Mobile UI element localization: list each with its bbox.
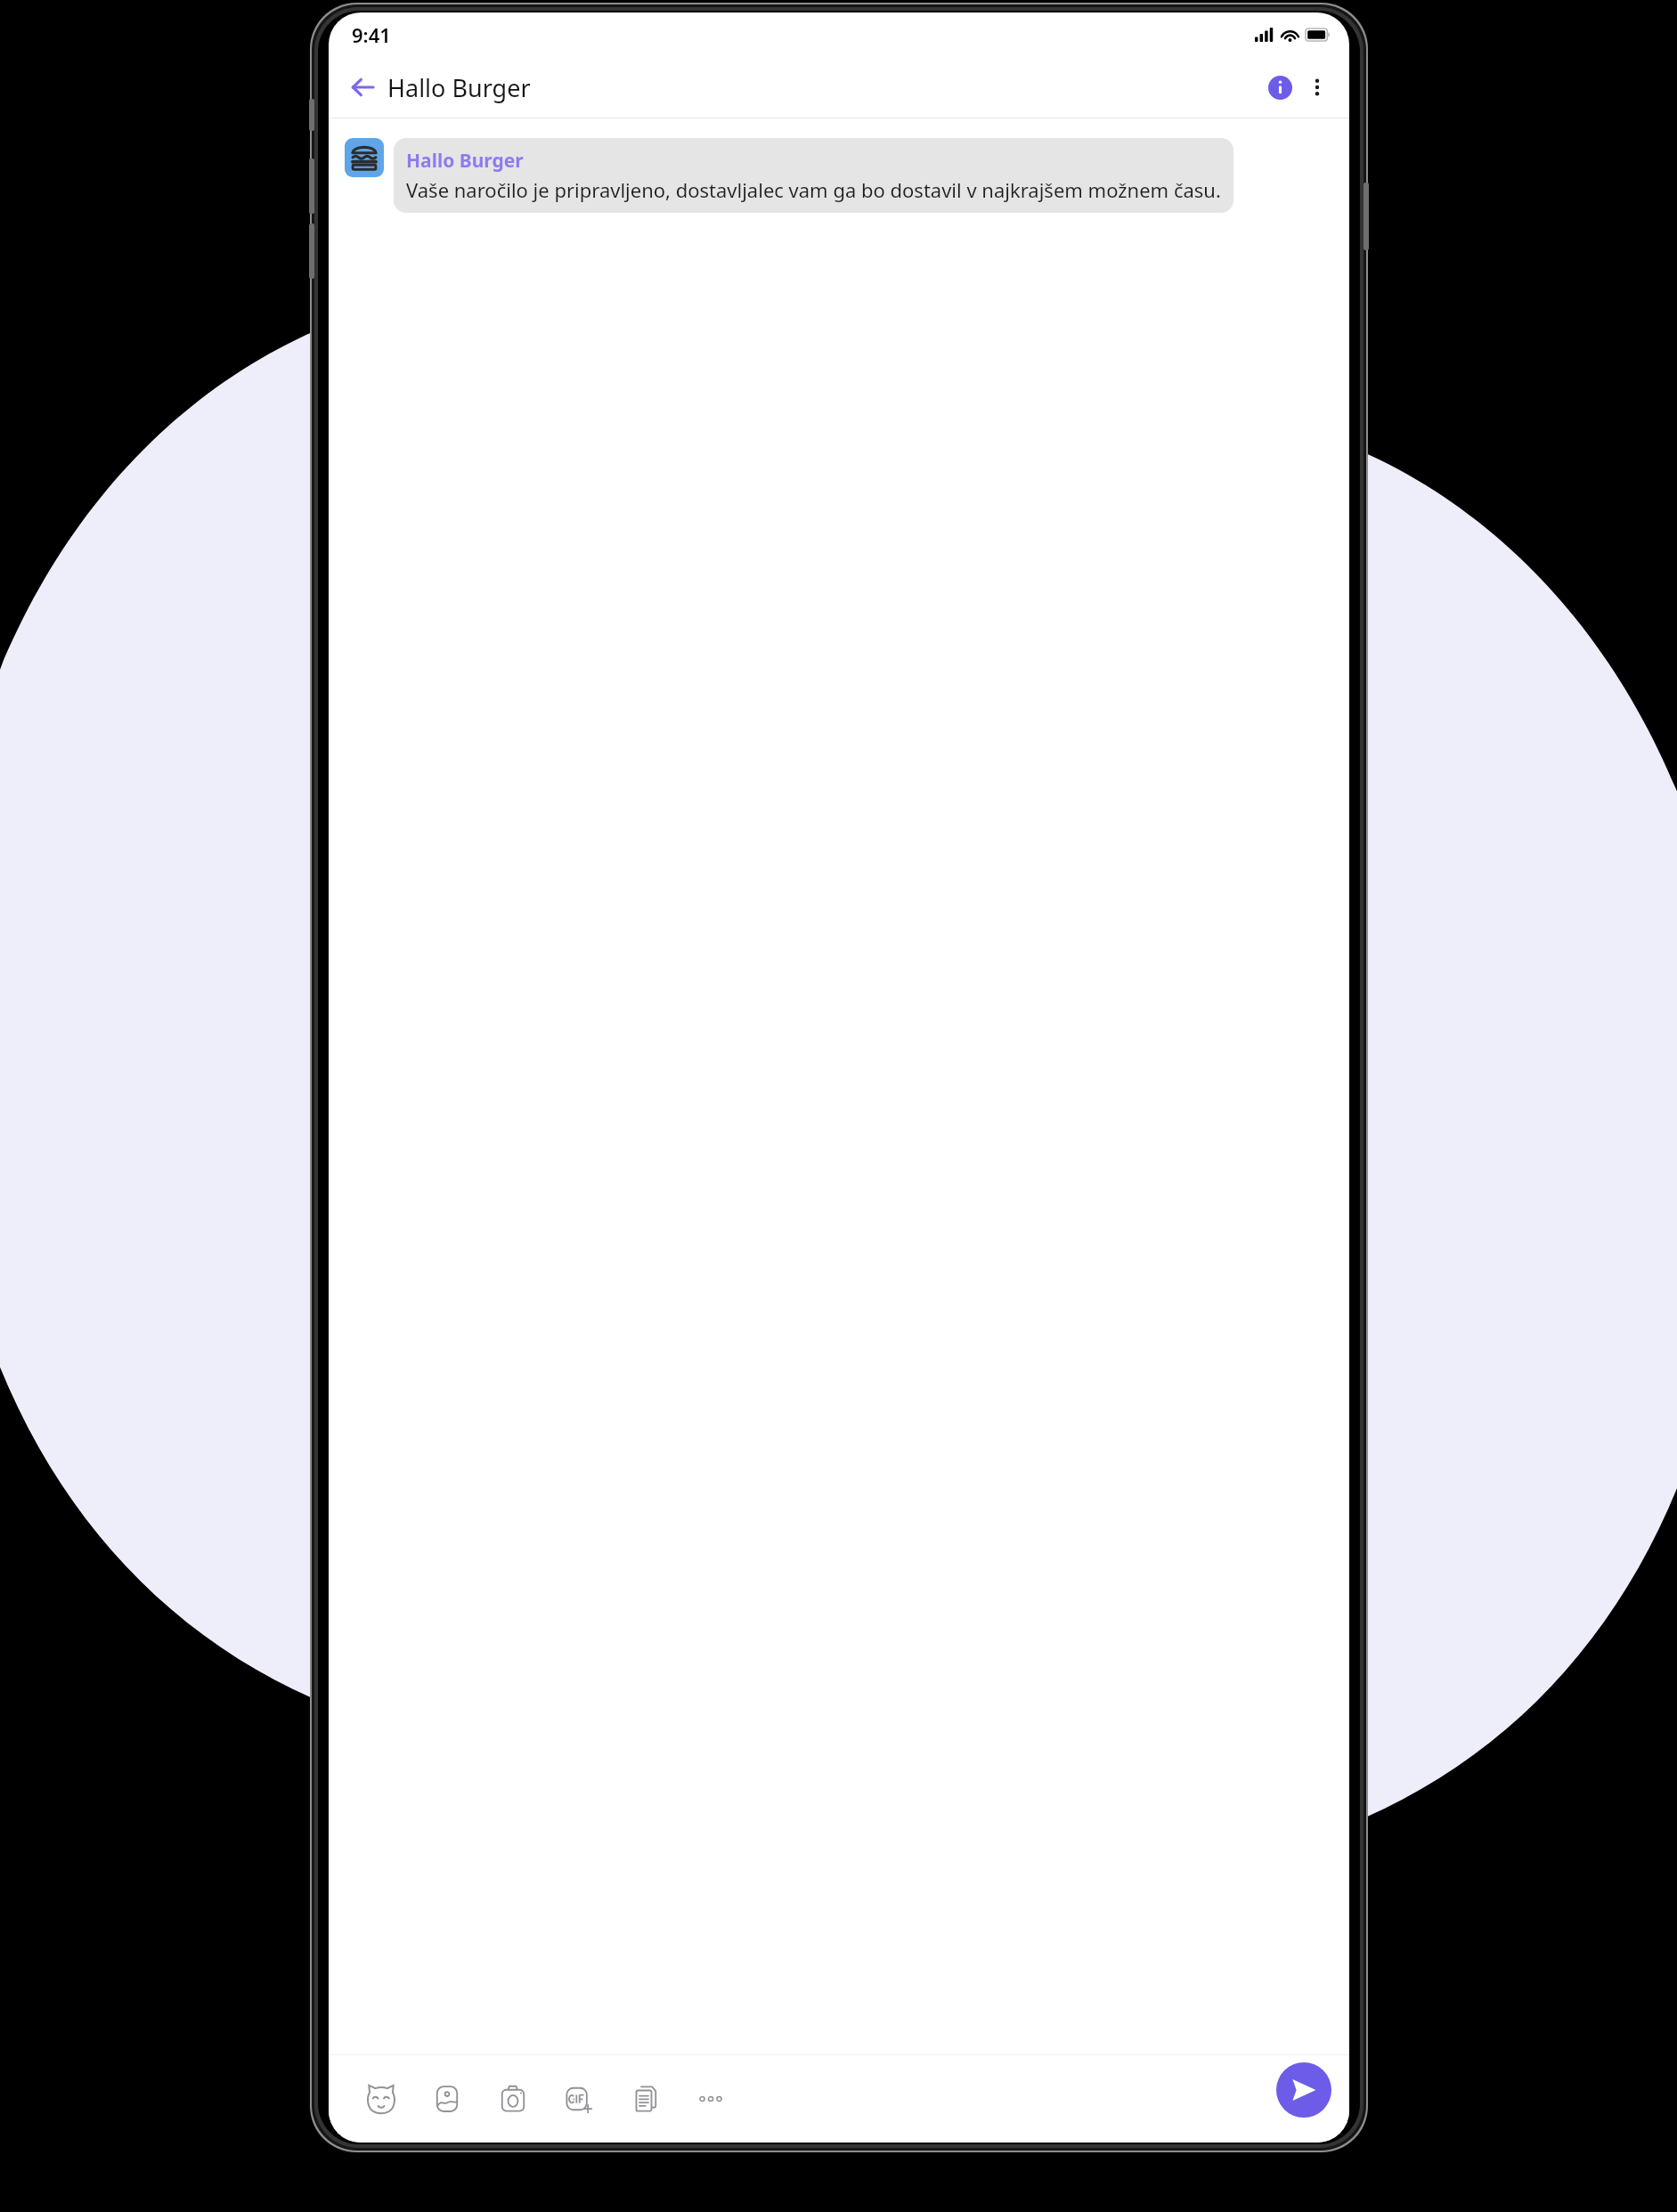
button[interactable]: Camera (480, 2067, 546, 2131)
button[interactable]: Stickers (348, 2067, 414, 2131)
button[interactable]: GIF (546, 2067, 612, 2131)
button[interactable]: Back (343, 68, 382, 107)
button[interactable]: Documents (612, 2067, 678, 2131)
button[interactable]: Photos (414, 2067, 480, 2131)
staticText: Hallo Burger (406, 148, 524, 174)
staticText: Vaše naročilo je pripravljeno, dostavlja… (406, 176, 1221, 203)
button[interactable]: Info (1262, 69, 1298, 105)
button[interactable]: Hallo Burger avatar (345, 138, 384, 177)
button[interactable]: More options (1299, 69, 1335, 105)
staticText: 9:41 (352, 21, 391, 48)
button[interactable]: More (678, 2067, 744, 2131)
button[interactable]: Hallo Burger (394, 138, 1233, 213)
staticText: Hallo Burger (387, 71, 531, 104)
button[interactable]: Send (1276, 2062, 1331, 2118)
